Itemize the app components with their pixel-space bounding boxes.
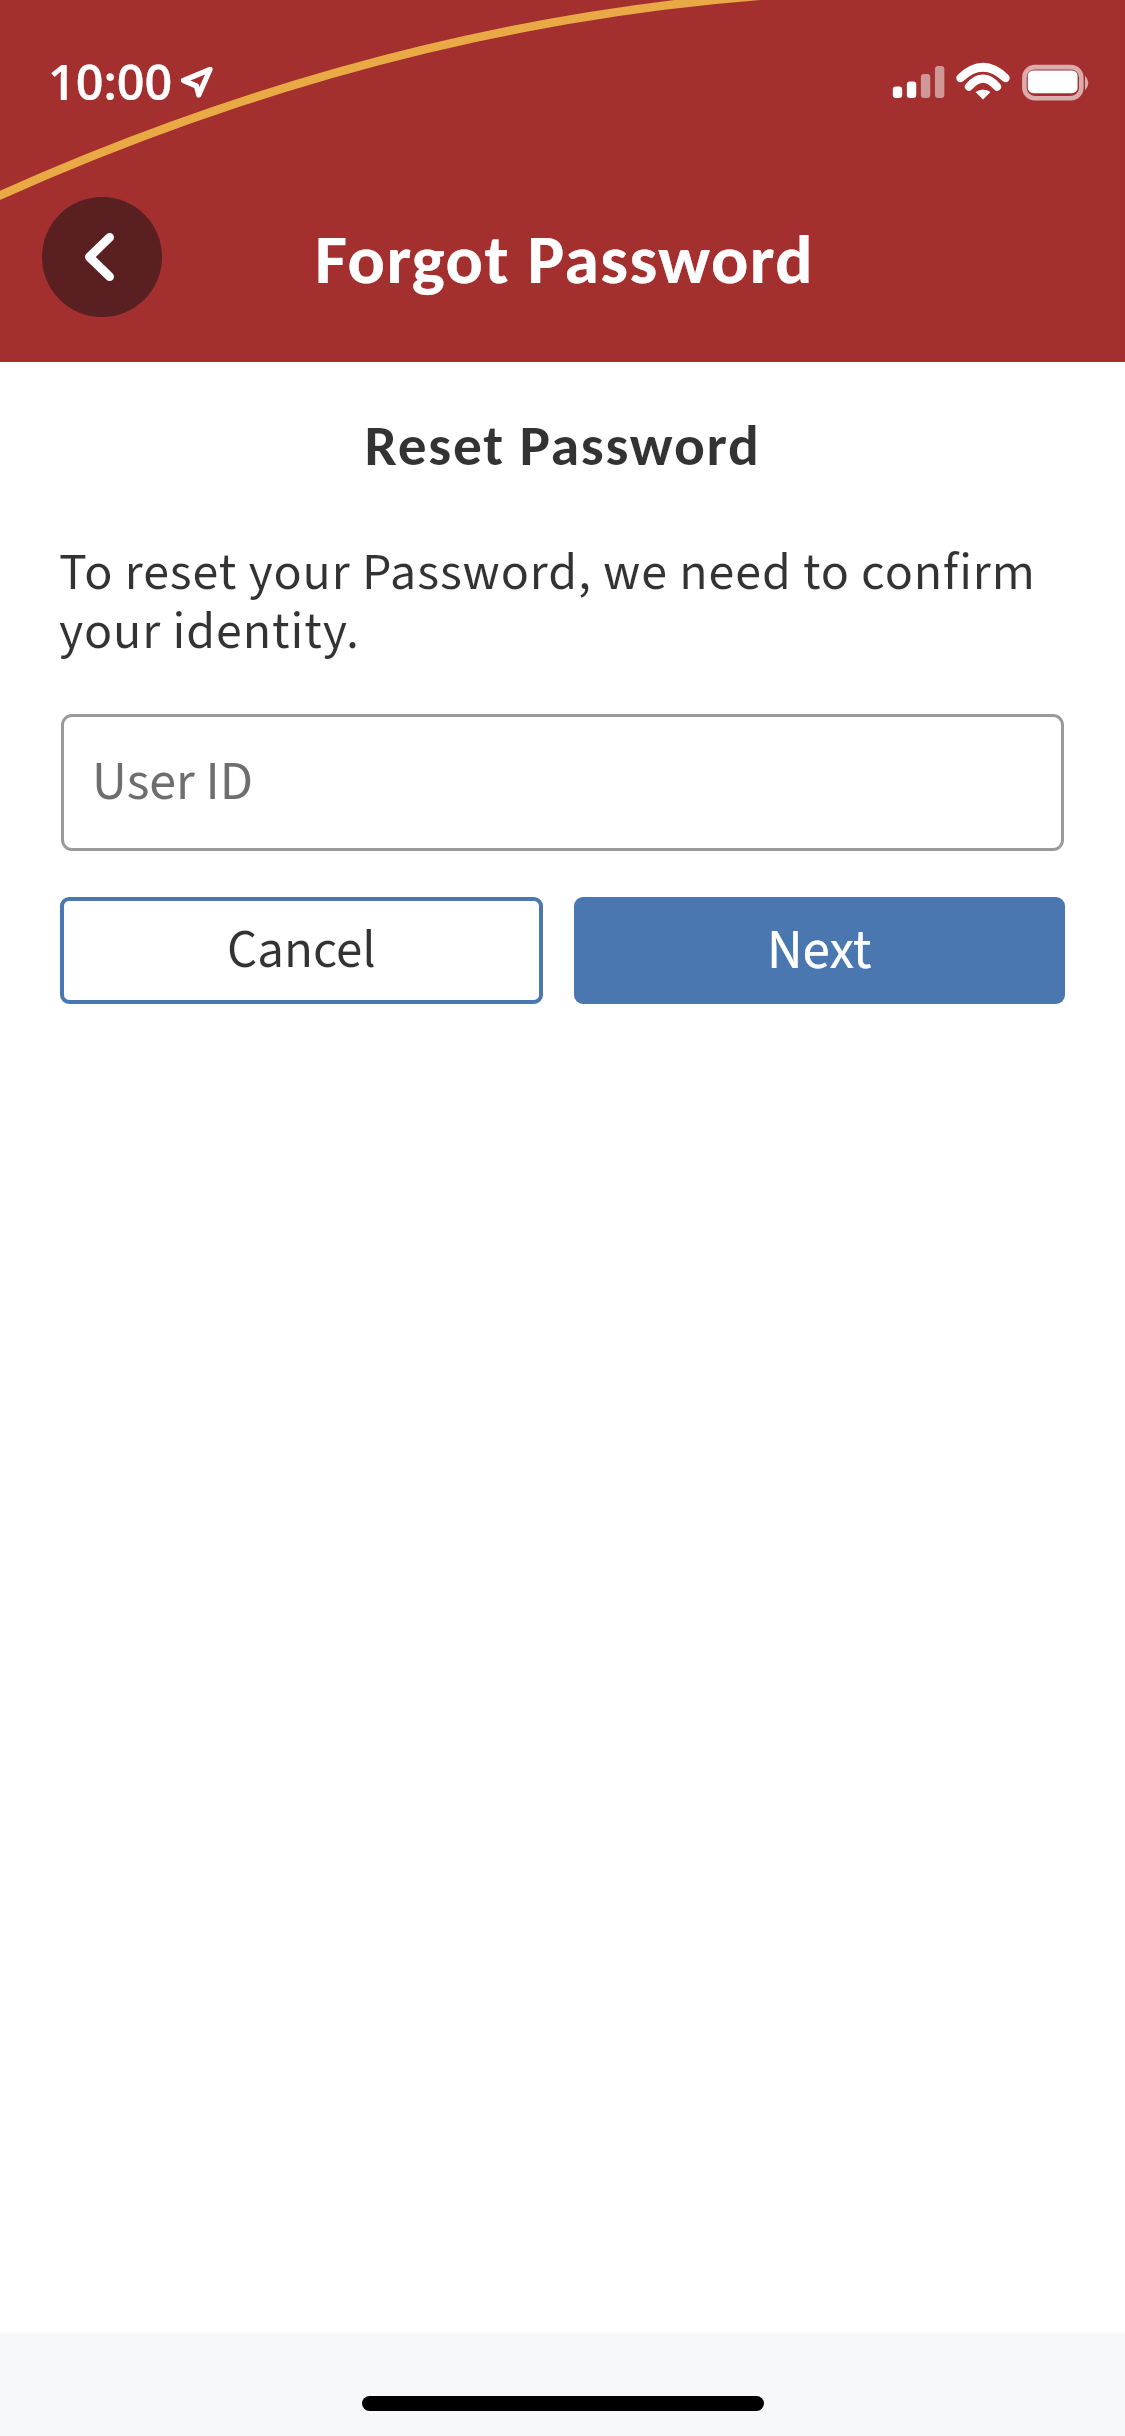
staticText: Next (767, 912, 872, 990)
button[interactable]: User ID (61, 714, 1064, 851)
button[interactable]: Cancel (60, 897, 543, 1004)
button[interactable]: Back (42, 197, 162, 317)
staticText: 10:00 (48, 48, 173, 114)
button[interactable]: Next (574, 897, 1065, 1004)
staticText: Forgot Password (315, 217, 815, 302)
staticText: Reset Password (0, 410, 1125, 480)
staticText: Cancel (227, 913, 376, 988)
staticText: To reset your Password, we need to confi… (59, 536, 1069, 669)
staticText: User ID (92, 744, 253, 821)
